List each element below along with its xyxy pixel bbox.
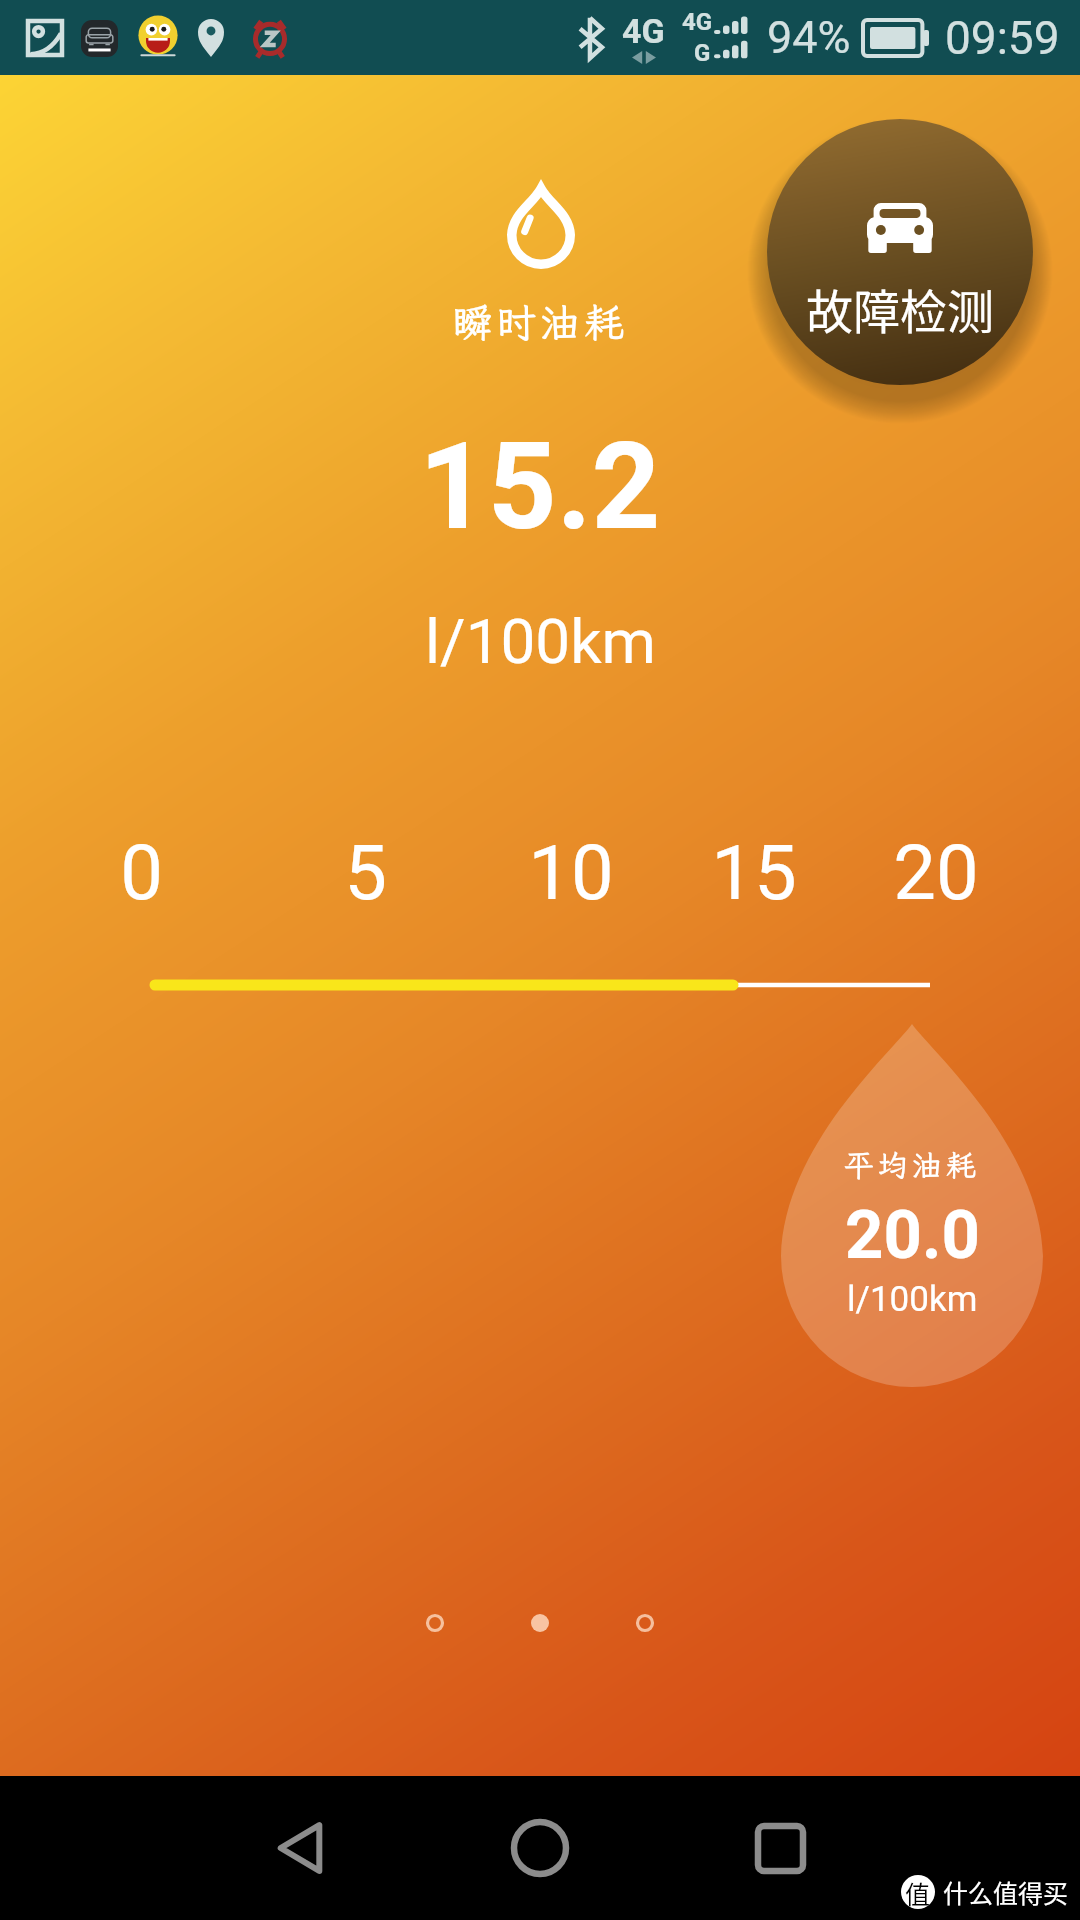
staticText: 什么值得买 [943,1874,1069,1910]
staticText: 20 [893,828,979,917]
staticText: l/100km [425,605,656,678]
staticText: 15.2 [419,417,661,558]
staticText: 94% [767,11,851,64]
staticText: 5 [344,828,387,917]
staticText: 10 [528,828,614,917]
staticText: 值 [905,1875,931,1909]
button[interactable]: 故障检测 [767,119,1033,385]
button[interactable]: Home [480,1788,600,1908]
staticText: G [682,39,711,67]
staticText: 09:59 [945,11,1060,65]
staticText: 4G [622,11,665,51]
button[interactable]: Back [240,1788,360,1908]
staticText: 15 [711,828,797,917]
staticText: 平均油耗 [844,1145,980,1185]
button[interactable]: Recent apps [720,1788,840,1908]
staticText: 0 [120,828,163,917]
staticText: 故障检测 [806,274,994,342]
staticText: 20.0 [845,1196,980,1275]
staticText: l/100km [847,1279,978,1320]
staticText: 瞬时油耗 [452,296,628,349]
staticText: 4G [682,8,713,36]
